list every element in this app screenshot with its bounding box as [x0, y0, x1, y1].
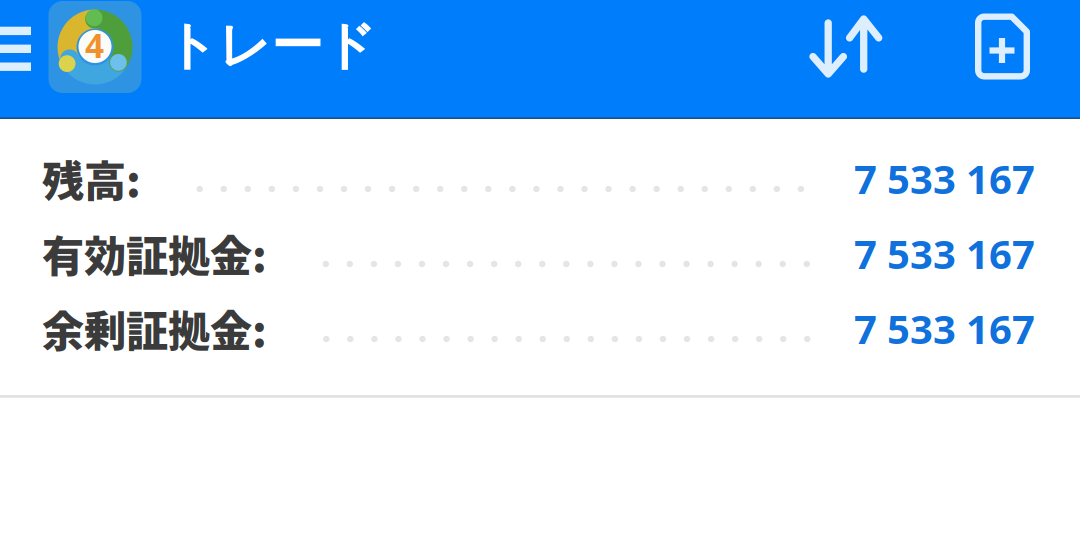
staticText: 7 533 167	[854, 152, 1035, 205]
staticText: 7 533 167	[854, 302, 1035, 355]
button[interactable]: New order	[975, 13, 1030, 79]
button[interactable]: Menu	[0, 27, 31, 71]
staticText: 余剰証拠金:	[42, 298, 267, 359]
staticText: 残高:	[42, 148, 141, 209]
staticText: 7 533 167	[854, 227, 1035, 280]
staticText: 4	[85, 23, 104, 67]
button[interactable]: Sort	[805, 15, 879, 79]
staticText: トレード	[165, 14, 376, 78]
staticText: 有効証拠金:	[42, 223, 267, 284]
